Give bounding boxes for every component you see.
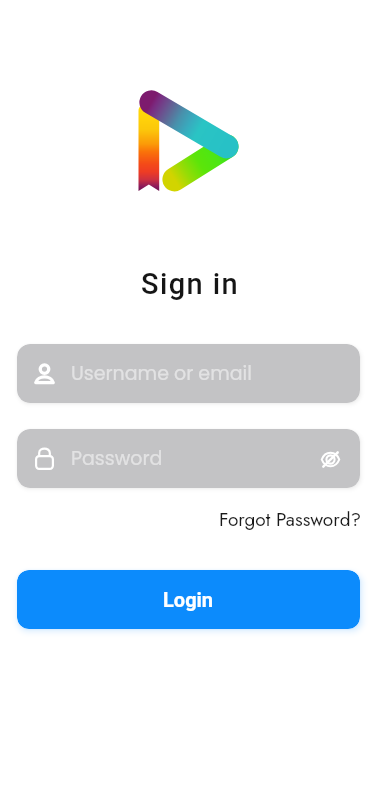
staticText: Sign in (5, 267, 370, 301)
button[interactable]: Username or email (17, 344, 360, 403)
staticText: Login (163, 588, 214, 611)
button[interactable]: Show password (319, 448, 341, 470)
button[interactable]: Login (17, 570, 360, 629)
button[interactable]: Forgot Password? (219, 506, 362, 533)
staticText: Username or email (71, 360, 252, 387)
button[interactable]: Password (17, 429, 360, 488)
staticText: Password (71, 445, 163, 472)
